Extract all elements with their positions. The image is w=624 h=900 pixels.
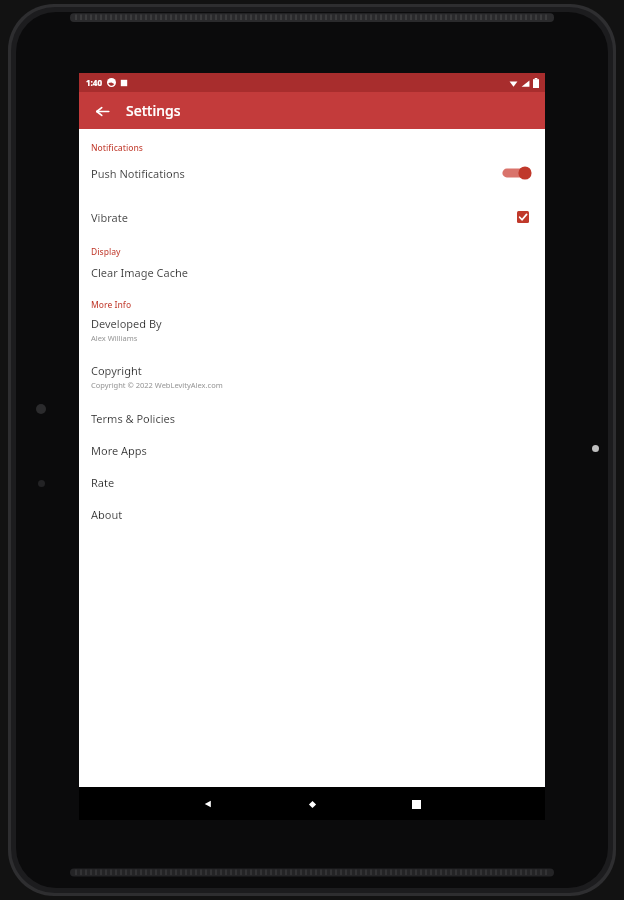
staticText: 1:40 [86, 77, 102, 88]
staticText: Settings [126, 101, 181, 120]
button[interactable]: Back [89, 98, 115, 124]
staticText: Alex Williams [91, 333, 138, 343]
button[interactable]: Clear Image Cache [79, 261, 545, 283]
button[interactable]: Vibrate checkbox [513, 207, 533, 227]
staticText: Notifications [91, 142, 143, 154]
staticText: Display [91, 246, 121, 258]
button[interactable]: Push Notifications [79, 157, 545, 189]
staticText: Developed By [91, 316, 162, 331]
button[interactable]: Copyright [79, 361, 545, 392]
staticText: Clear Image Cache [91, 265, 188, 280]
staticText: Vibrate [91, 210, 513, 225]
staticText: Copyright [91, 363, 142, 378]
button[interactable]: More Apps [79, 439, 545, 461]
button[interactable]: Rate [79, 471, 545, 493]
button[interactable]: Home [297, 789, 327, 819]
button[interactable]: Terms & Policies [79, 407, 545, 429]
staticText: More Apps [91, 443, 147, 458]
staticText: More Info [91, 299, 132, 311]
button[interactable]: About [79, 503, 545, 525]
button[interactable]: Recent apps [401, 789, 431, 819]
button[interactable]: Developed By [79, 314, 545, 345]
button[interactable]: Vibrate [79, 202, 545, 232]
staticText: Push Notifications [91, 166, 499, 181]
staticText: About [91, 507, 123, 522]
button[interactable]: Push notifications toggle [499, 162, 533, 184]
button[interactable]: Back [193, 789, 223, 819]
staticText: Rate [91, 475, 115, 490]
staticText: Copyright © 2022 WebLevityAlex.com [91, 380, 223, 390]
staticText: Terms & Policies [91, 411, 175, 426]
